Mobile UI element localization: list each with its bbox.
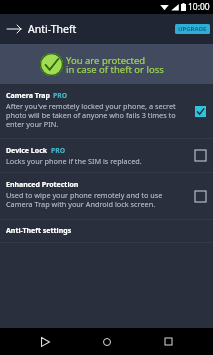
button[interactable]: UPGRADE — [175, 24, 210, 34]
button[interactable]: Toggle option — [193, 189, 208, 204]
staticText: Device Lock — [6, 146, 48, 156]
button[interactable]: Toggle option — [193, 148, 208, 163]
button[interactable]: Home — [90, 328, 124, 355]
button[interactable]: Back — [0, 14, 28, 44]
button[interactable]: Recent apps — [151, 328, 185, 355]
staticText: Enhanced Protection — [6, 180, 79, 190]
staticText: Locks your phone if the SIM is replaced. — [6, 156, 142, 166]
button[interactable]: Toggle option — [193, 104, 208, 119]
button[interactable]: Back — [28, 328, 62, 355]
staticText: You are protected in case of theft or lo… — [66, 54, 164, 76]
button[interactable]: Camera Trap — [0, 84, 213, 138]
staticText: Anti-Theft — [28, 22, 77, 36]
button[interactable]: Device Lock — [0, 139, 213, 172]
staticText: UPGRADE — [178, 25, 207, 33]
button[interactable]: Enhanced Protection — [0, 173, 213, 219]
staticText: Camera Trap — [6, 91, 50, 101]
staticText: 10:00 — [188, 1, 210, 13]
staticText: After you've remotely locked your phone,… — [6, 101, 185, 129]
staticText: PRO — [53, 91, 68, 100]
staticText: Used to wipe your phone remotely and to … — [6, 190, 185, 209]
staticText: Anti-Theft settings — [6, 226, 72, 236]
button[interactable]: Anti-Theft settings — [0, 220, 213, 242]
staticText: PRO — [51, 146, 66, 155]
